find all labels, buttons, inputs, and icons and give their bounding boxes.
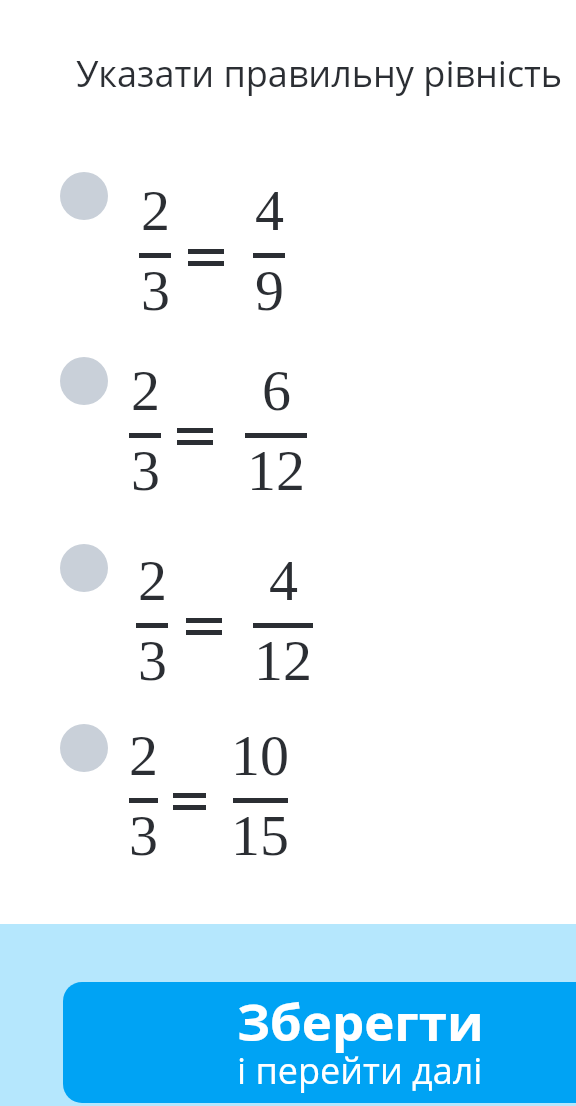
button[interactable]: Варіант 1: 2/3 = 4/9 — [0, 148, 576, 318]
staticText: 12 — [247, 438, 305, 502]
staticText: 3 — [131, 438, 160, 502]
staticText: Указати правильну рівність — [76, 49, 563, 98]
staticText: 12 — [254, 628, 312, 692]
staticText: Зберегти — [237, 986, 484, 1055]
staticText: 6 — [262, 358, 291, 422]
staticText: 4 — [255, 178, 284, 242]
button[interactable]: Варіант 2: 2/3 = 6/12 — [0, 333, 576, 503]
staticText: 2 — [131, 358, 160, 422]
staticText: 15 — [231, 803, 289, 867]
button[interactable]: Зберегти — [63, 982, 576, 1103]
staticText: 2 — [141, 178, 170, 242]
button[interactable]: Варіант 3: 2/3 = 4/12 — [0, 520, 576, 690]
staticText: 3 — [129, 803, 158, 867]
staticText: і перейти далі — [237, 1046, 483, 1095]
staticText: 10 — [231, 723, 289, 787]
staticText: 2 — [138, 548, 167, 612]
button[interactable]: Варіант 4: 2/3 = 10/15 — [0, 700, 576, 870]
staticText: 4 — [269, 548, 298, 612]
staticText: 3 — [138, 628, 167, 692]
staticText: 2 — [129, 723, 158, 787]
staticText: 3 — [141, 258, 170, 322]
staticText: 9 — [255, 258, 284, 322]
